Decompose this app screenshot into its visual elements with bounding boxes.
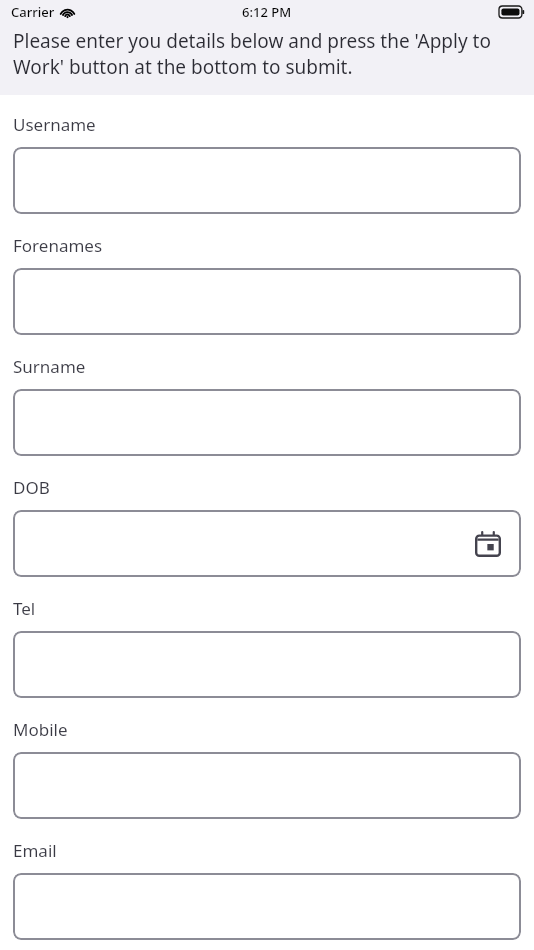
button[interactable] bbox=[13, 631, 521, 698]
staticText: Forenames bbox=[13, 234, 103, 257]
staticText: Email bbox=[13, 839, 57, 862]
button[interactable] bbox=[13, 389, 521, 456]
button[interactable] bbox=[13, 147, 521, 214]
button[interactable]: Open date picker bbox=[473, 529, 503, 559]
staticText: 6:12 PM bbox=[242, 3, 292, 21]
staticText: Please enter you details below and press… bbox=[13, 28, 522, 79]
staticText: Carrier bbox=[11, 3, 55, 21]
button[interactable] bbox=[13, 752, 521, 819]
button[interactable] bbox=[13, 268, 521, 335]
button[interactable] bbox=[13, 873, 521, 940]
button[interactable]: Open date picker bbox=[13, 510, 521, 577]
staticText: Mobile bbox=[13, 718, 68, 741]
staticText: DOB bbox=[13, 476, 50, 499]
staticText: Surname bbox=[13, 355, 86, 378]
staticText: Username bbox=[13, 113, 96, 136]
staticText: Tel bbox=[13, 597, 36, 620]
